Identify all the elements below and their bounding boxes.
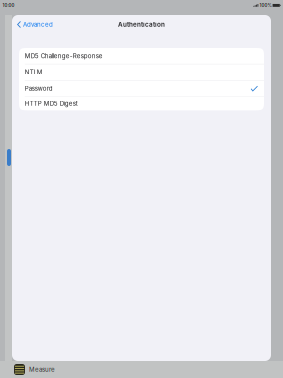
button[interactable]: Resize window xyxy=(7,149,11,166)
button[interactable]: MD5 Challenge-Response xyxy=(19,48,264,64)
staticText: 10:00 xyxy=(3,3,15,8)
staticText: Measure xyxy=(29,366,55,373)
staticText: Advanced xyxy=(23,21,53,28)
button[interactable]: NTLM xyxy=(19,64,264,81)
staticText: HTTP MD5 Digest xyxy=(25,100,78,107)
button[interactable]: HTTP MD5 Digest xyxy=(19,97,264,110)
button[interactable]: Password xyxy=(19,81,264,97)
staticText: Authentication xyxy=(118,21,165,28)
staticText: Password xyxy=(25,85,53,92)
button[interactable]: Measure xyxy=(0,361,61,378)
staticText: NTLM xyxy=(25,68,43,76)
staticText: 100% xyxy=(260,3,272,8)
staticText: MD5 Challenge-Response xyxy=(25,52,103,60)
button[interactable]: Advanced xyxy=(12,15,57,34)
